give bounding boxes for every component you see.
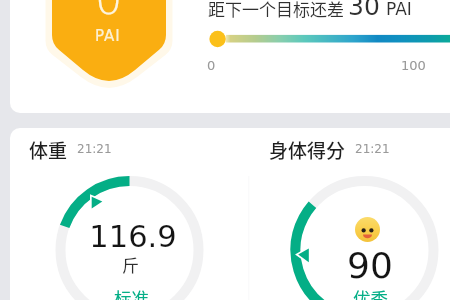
- button[interactable]: [10, 128, 450, 300]
- staticText: 0: [95, 0, 123, 24]
- button[interactable]: [10, 0, 450, 113]
- staticText: 21:21: [77, 142, 112, 156]
- staticText: 100: [401, 58, 426, 73]
- other: Body score mood: [355, 217, 380, 242]
- staticText: 30: [348, 0, 380, 21]
- staticText: 距下一个目标还差: [208, 0, 344, 21]
- staticText: 身体得分: [269, 136, 346, 164]
- staticText: 21:21: [355, 142, 390, 156]
- staticText: 90: [347, 245, 393, 287]
- staticText: 体重: [29, 136, 68, 164]
- staticText: 0: [207, 58, 216, 73]
- staticText: 斤: [122, 252, 139, 277]
- staticText: PAI: [95, 27, 121, 44]
- staticText: 标准: [114, 285, 149, 300]
- staticText: PAI: [386, 0, 412, 19]
- staticText: 116.9: [89, 219, 177, 255]
- staticText: 优秀: [353, 285, 388, 300]
